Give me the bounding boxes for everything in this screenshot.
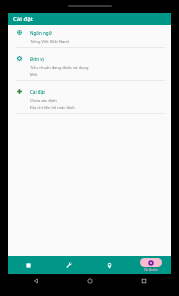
button[interactable]: Home xyxy=(8,256,48,274)
button[interactable]: Back xyxy=(8,274,63,288)
button[interactable]: Account xyxy=(130,256,171,274)
staticText: Cài đặt xyxy=(30,89,45,95)
staticText: Tiêu chuẩn đang được sử dụng Mét xyxy=(30,65,89,77)
staticText: Tiếng Việt (Việt Nam) xyxy=(30,39,70,44)
staticText: Đơn vị xyxy=(30,56,44,62)
button[interactable]: Recents xyxy=(117,274,171,288)
button[interactable]: Đơn vị xyxy=(8,51,171,84)
staticText: Cài đặt xyxy=(13,15,33,23)
staticText: Ngôn ngữ xyxy=(30,30,52,36)
button[interactable]: Cài đặt xyxy=(8,84,171,117)
staticText: Chưa xác định Địa chỉ liên hệ mặc định xyxy=(30,98,75,110)
button[interactable]: Tools xyxy=(48,256,89,274)
staticText: Tài khoản xyxy=(144,268,158,272)
button[interactable]: Home xyxy=(63,274,117,288)
button[interactable]: Cài đặt xyxy=(8,13,171,25)
button[interactable]: Location xyxy=(89,256,130,274)
button[interactable]: Ngôn ngữ xyxy=(8,25,171,51)
